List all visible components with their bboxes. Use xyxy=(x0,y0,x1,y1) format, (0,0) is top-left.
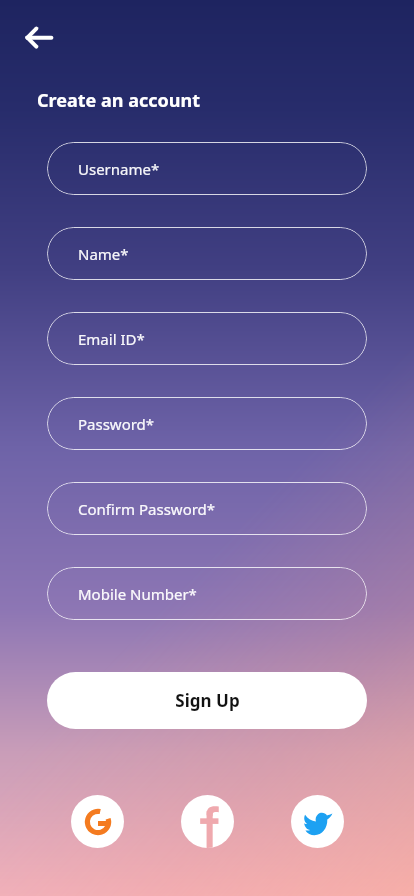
button[interactable]: Password* xyxy=(47,397,367,450)
button[interactable]: Name* xyxy=(47,227,367,280)
staticText: Name* xyxy=(78,244,129,264)
staticText: Create an account xyxy=(37,88,200,113)
button[interactable]: Sign up with Twitter xyxy=(291,795,344,848)
button[interactable]: Email ID* xyxy=(47,312,367,365)
staticText: Confirm Password* xyxy=(78,499,216,519)
button[interactable]: Sign up with Facebook xyxy=(181,795,234,848)
button[interactable]: Mobile Number* xyxy=(47,567,367,620)
button[interactable]: Sign up with Google xyxy=(71,795,124,848)
staticText: Sign Up xyxy=(175,689,240,712)
button[interactable]: Back xyxy=(14,14,60,60)
staticText: Mobile Number* xyxy=(78,584,197,604)
button[interactable]: Sign Up xyxy=(47,672,367,729)
staticText: Username* xyxy=(78,159,160,179)
staticText: Email ID* xyxy=(78,329,145,349)
button[interactable]: Username* xyxy=(47,142,367,195)
staticText: Password* xyxy=(78,414,155,434)
button[interactable]: Confirm Password* xyxy=(47,482,367,535)
